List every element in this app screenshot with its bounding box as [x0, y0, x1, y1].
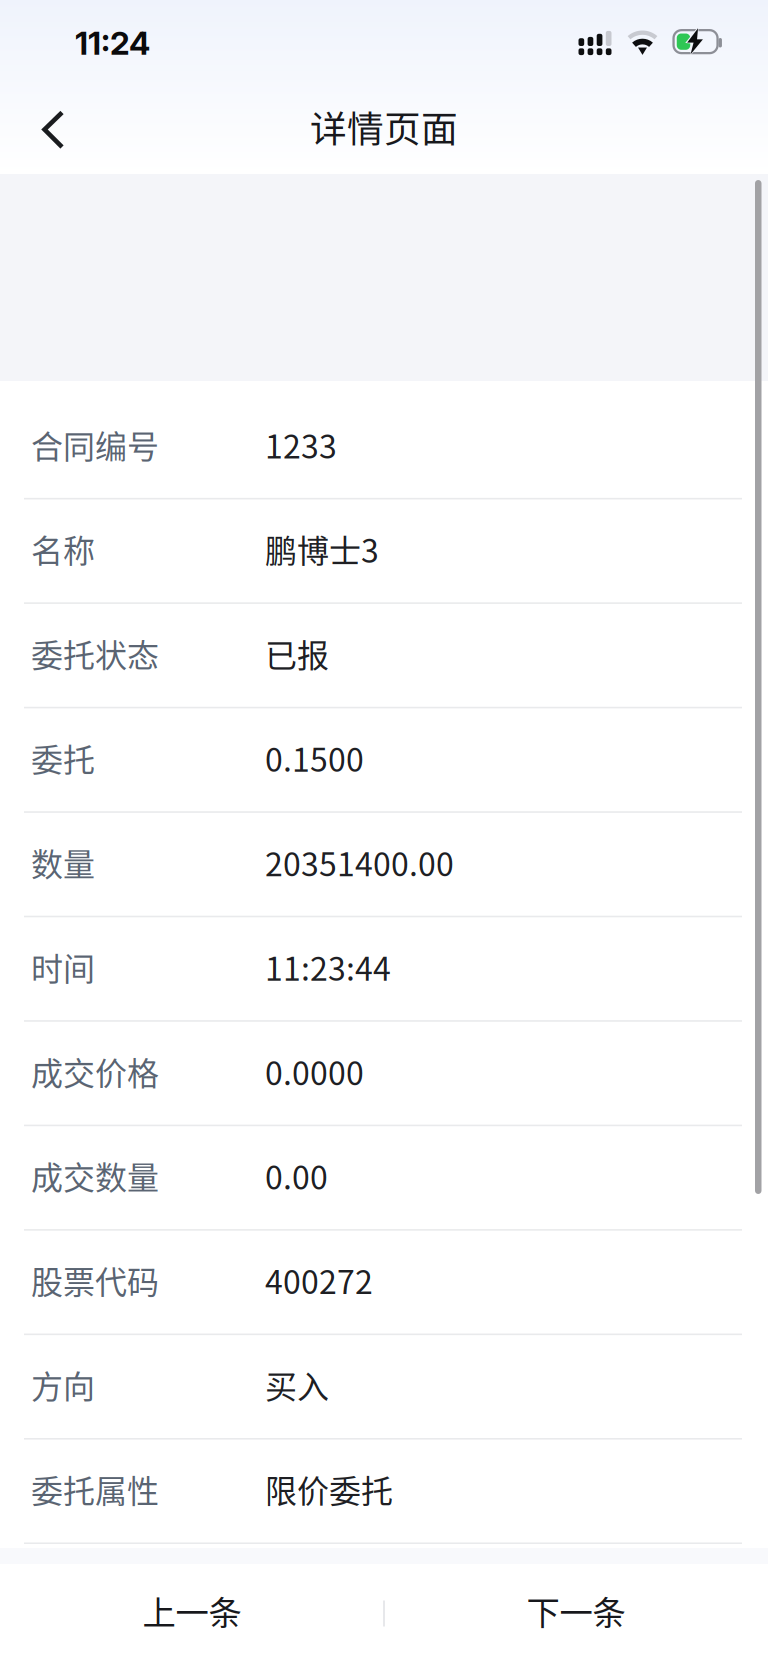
staticText: 股票代码: [31, 1257, 159, 1303]
staticText: 合同编号: [31, 421, 159, 468]
staticText: 成交价格: [31, 1048, 159, 1094]
staticText: 上一条: [142, 1586, 241, 1635]
staticText: 已报: [265, 630, 329, 676]
staticText: 委托状态: [31, 630, 159, 676]
staticText: 数量: [31, 839, 95, 885]
staticText: 限价委托: [265, 1466, 393, 1512]
staticText: 方向: [31, 1361, 95, 1408]
staticText: 成交数量: [31, 1152, 159, 1199]
staticText: 11:23:44: [265, 944, 391, 990]
button[interactable]: 上一条: [0, 1564, 384, 1663]
staticText: 委托属性: [31, 1466, 159, 1512]
staticText: 鹏博士3: [265, 526, 379, 572]
button[interactable]: 下一条: [384, 1564, 768, 1663]
staticText: 详情页面: [310, 100, 458, 153]
staticText: 1233: [265, 421, 337, 468]
staticText: 20351400.00: [265, 839, 454, 885]
staticText: 委托: [31, 735, 95, 781]
staticText: 0.00: [265, 1152, 328, 1199]
staticText: 400272: [265, 1257, 373, 1303]
staticText: 名称: [31, 526, 95, 572]
staticText: 0.0000: [265, 1048, 364, 1094]
staticText: 买入: [265, 1361, 329, 1408]
staticText: 时间: [31, 944, 95, 990]
staticText: 0.1500: [265, 735, 364, 781]
staticText: 下一条: [526, 1586, 625, 1635]
button[interactable]: 返回: [12, 86, 95, 173]
staticText: 11:24: [75, 24, 150, 62]
